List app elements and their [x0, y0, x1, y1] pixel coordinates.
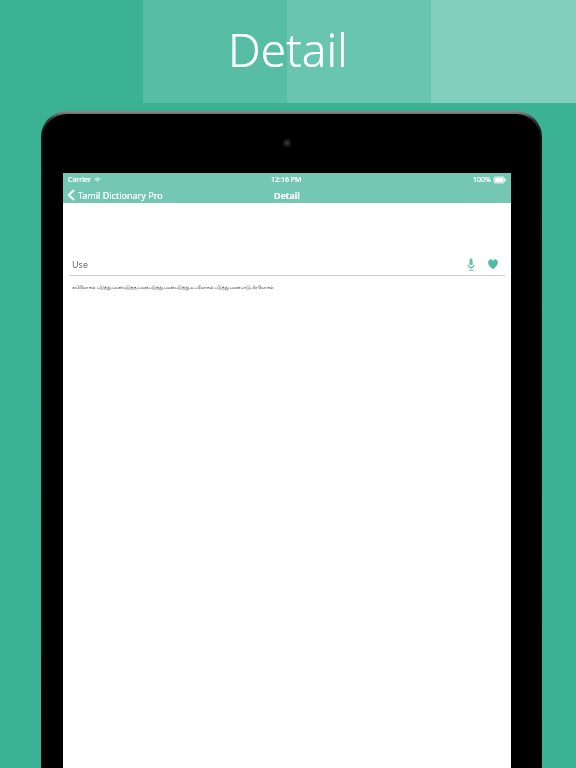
staticText: Detail — [274, 189, 300, 201]
button[interactable]: Favorite — [484, 255, 502, 273]
button[interactable]: Tamil Dictionary Pro — [68, 189, 163, 201]
staticText: Carrier — [68, 175, 91, 185]
staticText: 12:16 PM — [271, 175, 302, 185]
button[interactable]: Speak — [462, 255, 480, 273]
staticText: லபியோகம் படுத்து,பயன்படுத்த,பயன்படுத்து,… — [72, 284, 274, 291]
staticText: Detail — [228, 18, 348, 81]
staticText: Tamil Dictionary Pro — [78, 189, 163, 201]
staticText: Use — [72, 258, 88, 270]
staticText: 100% — [473, 175, 491, 185]
